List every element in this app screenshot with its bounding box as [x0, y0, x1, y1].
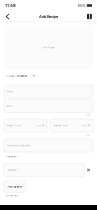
staticText: Serves	[7, 105, 13, 107]
staticText: 100%	[78, 3, 86, 8]
button[interactable]: Save recipe	[84, 11, 94, 22]
staticText: Breakfast	[17, 75, 27, 77]
staticText: mins	[82, 124, 87, 127]
button[interactable]: Cooking Time	[50, 119, 93, 132]
button[interactable]: Add Ingredient	[4, 181, 26, 192]
staticText: Ingredients	[6, 155, 17, 158]
button[interactable]: Remove ingredient	[84, 163, 93, 176]
staticText: Add Ingredient	[7, 185, 22, 188]
button[interactable]: Name	[4, 85, 93, 98]
button[interactable]: Ingredient 1	[4, 163, 84, 176]
staticText: Ingredient 1	[7, 169, 19, 171]
button[interactable]: Back	[3, 11, 13, 22]
staticText: 11:48	[5, 3, 16, 8]
staticText: Pick Image	[43, 46, 54, 49]
staticText: Directions	[6, 194, 17, 197]
staticText: Description (Optional)	[7, 144, 31, 147]
staticText: mins	[36, 124, 41, 127]
staticText: Prepare Time	[7, 124, 21, 127]
staticText: Add Recipe	[39, 14, 58, 19]
button[interactable]: Description (Optional)	[4, 139, 93, 152]
button[interactable]: Category	[6, 72, 93, 79]
staticText: Category	[6, 75, 15, 77]
staticText: Cooking Time	[53, 124, 68, 127]
staticText: 0/50	[85, 114, 89, 116]
staticText: Name	[7, 90, 13, 93]
button[interactable]: Prepare Time	[4, 119, 47, 132]
staticText: 0/50	[85, 134, 89, 136]
